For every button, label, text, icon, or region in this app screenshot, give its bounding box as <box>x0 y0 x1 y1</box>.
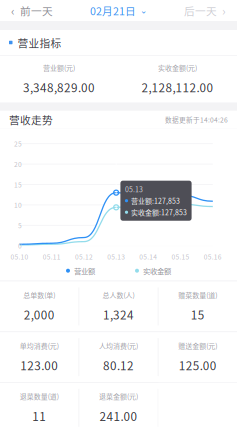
staticText: 实收金额 <box>143 265 171 276</box>
staticText: 退菜数量(道) <box>20 391 59 401</box>
staticText: 123.00 <box>20 357 58 374</box>
button[interactable]: 02月21日 <box>90 0 147 21</box>
staticText: 10 <box>14 200 22 210</box>
staticText: 05.10 <box>10 252 28 262</box>
staticText: 人均消费(元) <box>99 341 138 351</box>
staticText: 2,000 <box>24 306 55 323</box>
staticText: 02月21日 <box>90 3 136 18</box>
staticText: 前一天 <box>20 3 53 18</box>
staticText: 0 <box>18 241 22 251</box>
staticText: 单均消费(元) <box>20 341 59 351</box>
staticText: 20 <box>14 159 22 169</box>
staticText: ‹ <box>11 2 15 19</box>
staticText: 05.15 <box>172 252 190 262</box>
staticText: 05.16 <box>204 252 222 262</box>
staticText: 赠送金额(元) <box>178 341 217 351</box>
staticText: 总单数(单) <box>23 290 55 300</box>
staticText: 2,128,112.00 <box>141 79 213 96</box>
button[interactable]: 后一天 <box>176 0 237 21</box>
staticText: 营业指标 <box>17 35 61 50</box>
staticText: 3,348,829.00 <box>23 79 95 96</box>
staticText: 后一天 <box>184 3 217 18</box>
staticText: 05.14 <box>139 252 157 262</box>
staticText: 05.11 <box>43 252 61 262</box>
staticText: 赠菜数量(道) <box>178 290 217 300</box>
staticText: 实收金额:127,853 <box>131 207 187 217</box>
staticText: 数据更新于14:04:26 <box>165 115 228 125</box>
staticText: 1,324 <box>103 306 134 323</box>
staticText: 总人数(人) <box>102 290 134 300</box>
staticText: 241.00 <box>99 407 137 424</box>
staticText: 15 <box>14 180 22 189</box>
staticText: 营业额 <box>74 265 95 276</box>
staticText: 实收金额(元) <box>158 63 197 73</box>
staticText: › <box>222 2 226 19</box>
staticText: ⌄ <box>140 5 147 16</box>
staticText: 125.00 <box>179 357 217 374</box>
staticText: 80.12 <box>103 357 134 374</box>
staticText: 05.12 <box>75 252 93 262</box>
staticText: 05.13 <box>125 184 143 194</box>
staticText: 15 <box>191 306 205 323</box>
staticText: 25 <box>14 139 22 149</box>
button[interactable]: ‹ <box>0 0 61 21</box>
staticText: 11 <box>32 407 46 424</box>
staticText: 退菜金额(元) <box>99 391 138 401</box>
staticText: 营收走势 <box>9 112 53 127</box>
staticText: 营业额(元) <box>43 63 75 73</box>
staticText: 05.13 <box>107 252 125 262</box>
staticText: 5 <box>18 220 22 230</box>
staticText: 营业额:127,853 <box>131 196 180 206</box>
